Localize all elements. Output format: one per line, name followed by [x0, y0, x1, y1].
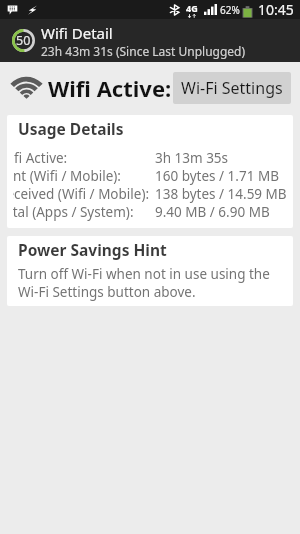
staticText: 10:45 [258, 0, 294, 19]
staticText: 9.40 MB / 6.90 MB [155, 203, 270, 221]
staticText: Power Savings Hint [18, 239, 167, 260]
staticText: Wifi Detail [41, 23, 113, 43]
button[interactable]: Wi-Fi Settings [173, 72, 291, 104]
staticText: 138 bytes / 14.59 MB [155, 185, 287, 203]
other: Wi-Fi [12, 77, 41, 99]
staticText: Wifi Active: [48, 73, 172, 103]
staticText: Usage Details [18, 118, 124, 139]
staticText: 3h 13m 35s [155, 149, 229, 167]
staticText: 4G [186, 2, 198, 14]
staticText: 50 [16, 32, 31, 49]
staticText: Turn off Wi-Fi when not in use using the… [18, 265, 282, 301]
staticText: 160 bytes / 1.71 MB [155, 167, 279, 185]
staticText: Received (Wifi / Mobile): [13, 185, 150, 203]
staticText: Wifi Active: [13, 149, 68, 167]
staticText: 23h 43m 31s (Since Last Unplugged) [41, 43, 246, 59]
staticText: 62% [220, 3, 240, 17]
staticText: Total (Apps / System): [13, 203, 134, 221]
staticText: Wi-Fi Settings [181, 77, 283, 99]
staticText: Sent (Wifi / Mobile): [13, 167, 121, 185]
